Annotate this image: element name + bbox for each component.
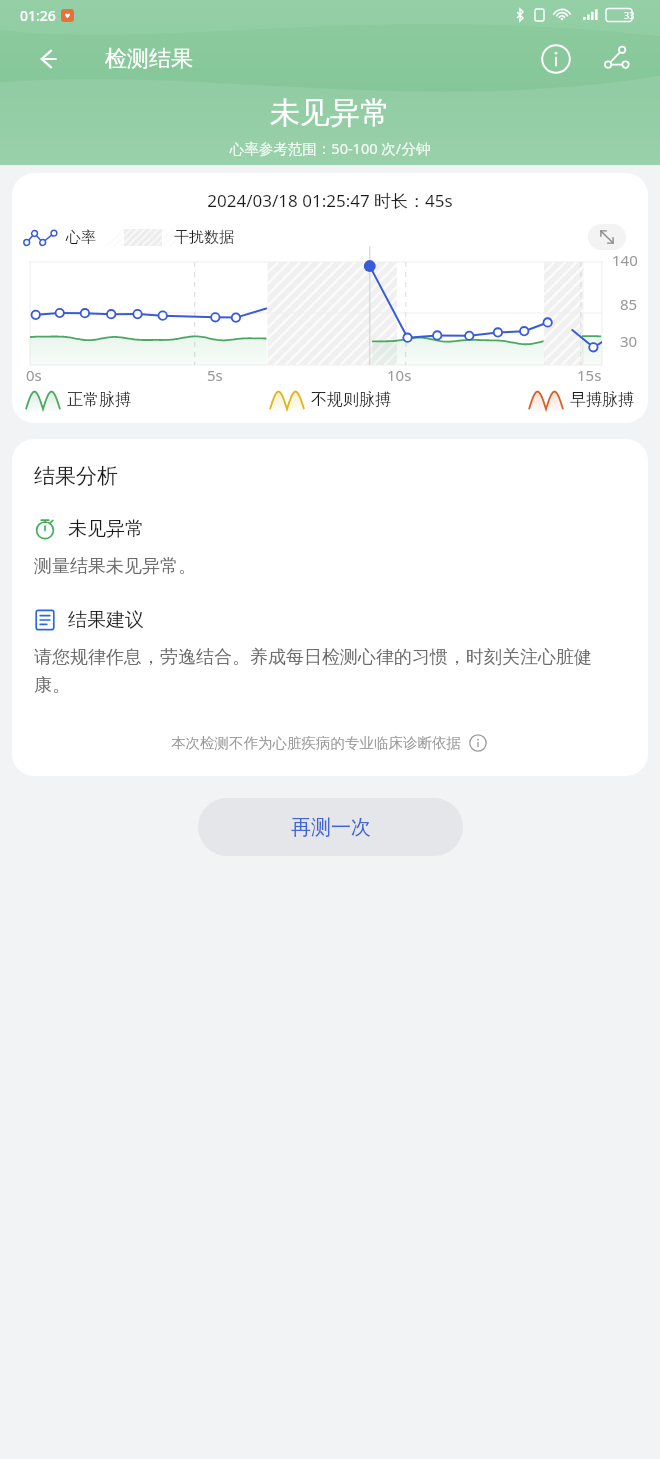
staticText: 请您规律作息，劳逸结合。养成每日检测心律的习惯，时刻关注心脏健康。 bbox=[34, 646, 626, 696]
button[interactable]: Info bbox=[532, 35, 580, 83]
staticText: 01:26 bbox=[20, 6, 56, 25]
staticText: 10s bbox=[387, 365, 412, 385]
staticText: 心率 bbox=[66, 228, 96, 247]
staticText: 测量结果未见异常。 bbox=[34, 555, 196, 578]
staticText: 30 bbox=[620, 331, 638, 351]
staticText: 早搏脉搏 bbox=[570, 390, 634, 410]
button[interactable]: 再测一次 bbox=[198, 798, 463, 856]
staticText: 结果建议 bbox=[68, 608, 144, 632]
staticText: 不规则脉搏 bbox=[311, 390, 391, 410]
button[interactable]: Expand chart bbox=[588, 224, 626, 250]
staticText: 2024/03/18 01:25:47 时长：45s bbox=[12, 189, 648, 212]
staticText: 心率参考范围：50-100 次/分钟 bbox=[0, 138, 660, 158]
staticText: 5s bbox=[207, 365, 223, 385]
staticText: 85 bbox=[620, 294, 638, 314]
staticText: 未见异常 bbox=[68, 517, 144, 541]
button[interactable]: Share bbox=[592, 35, 640, 83]
staticText: 本次检测不作为心脏疾病的专业临床诊断依据 bbox=[171, 734, 461, 752]
staticText: 检测结果 bbox=[105, 45, 193, 73]
staticText: 15s bbox=[577, 365, 602, 385]
staticText: 正常脉搏 bbox=[67, 390, 131, 410]
button[interactable]: Disclaimer info bbox=[467, 732, 489, 754]
staticText: 结果分析 bbox=[34, 463, 118, 489]
button[interactable]: Back bbox=[26, 37, 70, 81]
staticText: 未见异常 bbox=[0, 94, 660, 132]
staticText: 0s bbox=[26, 365, 42, 385]
staticText: 33 bbox=[624, 9, 635, 21]
staticText: 140 bbox=[612, 250, 638, 270]
staticText: 干扰数据 bbox=[174, 228, 234, 247]
staticText: 再测一次 bbox=[291, 815, 371, 840]
